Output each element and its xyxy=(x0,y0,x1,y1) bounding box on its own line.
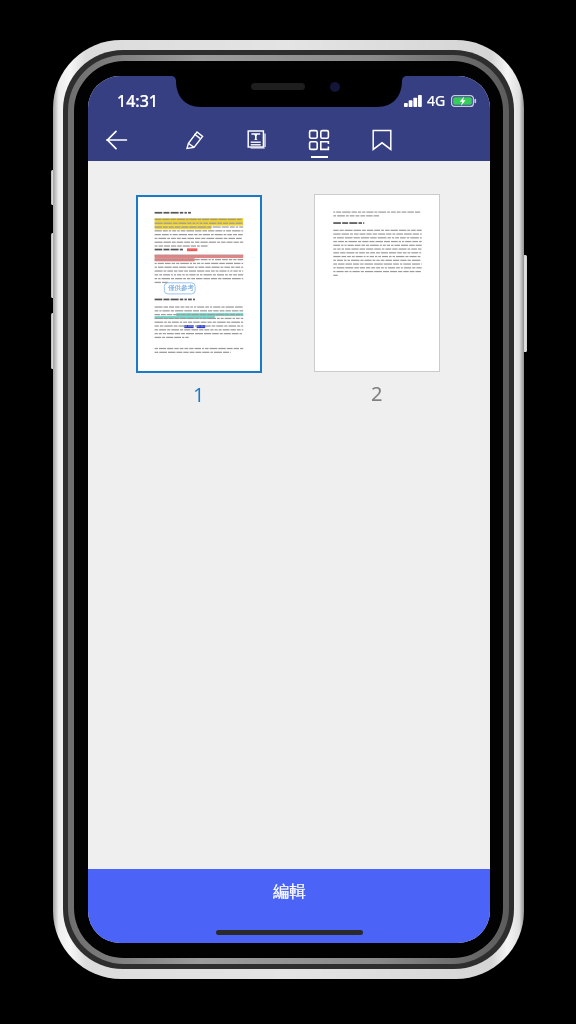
button[interactable]: Bookmark xyxy=(362,120,402,160)
button[interactable]: Pages xyxy=(299,120,339,160)
staticText: 4G xyxy=(427,91,446,110)
staticText: 1 xyxy=(193,381,205,408)
button[interactable]: Edit xyxy=(175,120,215,160)
staticText: 僅供參考 xyxy=(168,284,194,292)
button[interactable]: Text recognition xyxy=(237,120,277,160)
button[interactable]: 編輯 xyxy=(88,869,490,943)
button[interactable]: Back xyxy=(97,120,137,160)
staticText: 14:31 xyxy=(117,90,158,112)
button[interactable]: Page 1 xyxy=(136,195,262,373)
staticText: 2 xyxy=(371,380,383,407)
staticText: 編輯 xyxy=(273,881,306,902)
button[interactable]: Page 2 xyxy=(314,194,440,372)
